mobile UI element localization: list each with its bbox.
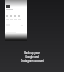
staticText: Back up your xyxy=(24,51,40,54)
button[interactable] xyxy=(5,15,9,20)
button[interactable] xyxy=(5,0,27,41)
button[interactable] xyxy=(9,15,13,20)
staticText: Instagram account xyxy=(21,59,44,62)
button[interactable] xyxy=(13,15,17,20)
button[interactable] xyxy=(17,15,21,20)
staticText: Google and xyxy=(25,55,39,58)
